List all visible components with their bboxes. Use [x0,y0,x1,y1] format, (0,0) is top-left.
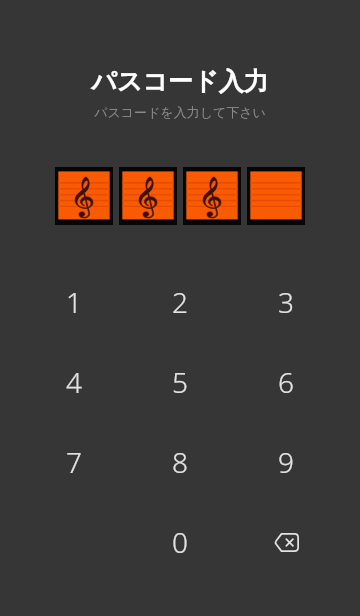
staticText: 8 [172,443,188,481]
staticText: 1 [66,283,82,321]
button[interactable]: 0 [127,502,233,582]
staticText: 5 [172,363,188,401]
button[interactable]: 6 [233,342,339,422]
other: Passcode digit entered [119,167,177,225]
staticText: 3 [278,283,294,321]
other: Passcode digit entered [183,167,241,225]
staticText: 9 [278,443,294,481]
staticText: 2 [172,283,188,321]
other: Passcode digit empty [247,167,305,225]
staticText: パスコードを入力して下さい [0,104,360,120]
button[interactable]: 9 [233,422,339,502]
button[interactable]: 8 [127,422,233,502]
staticText: 6 [278,363,294,401]
button[interactable]: 4 [21,342,127,422]
staticText: 4 [66,363,82,401]
button[interactable]: 3 [233,262,339,342]
staticText: 7 [66,443,82,481]
other: Passcode digit entered [55,167,113,225]
staticText: パスコード入力 [0,66,360,97]
button[interactable]: 2 [127,262,233,342]
button[interactable]: 7 [21,422,127,502]
staticText: 0 [172,523,188,561]
button[interactable]: 1 [21,262,127,342]
button[interactable]: 5 [127,342,233,422]
button[interactable]: Backspace [233,502,339,582]
